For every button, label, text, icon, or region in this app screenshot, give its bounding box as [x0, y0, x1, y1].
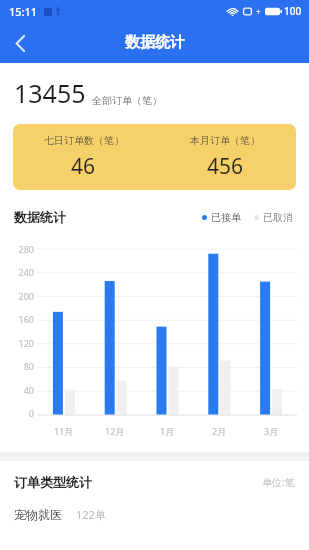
staticText: 160	[18, 313, 34, 325]
staticText: 13455	[14, 76, 86, 110]
staticText: 已取消	[263, 211, 293, 224]
staticText: 100	[284, 4, 302, 18]
staticText: 240	[18, 266, 34, 278]
staticText: 单位:笔	[262, 475, 295, 489]
button[interactable]: 宠物就医	[14, 507, 309, 522]
staticText: 数据统计	[125, 33, 185, 52]
staticText: 40	[23, 384, 34, 396]
button[interactable]: Back	[0, 23, 40, 63]
staticText: +	[256, 6, 261, 17]
staticText: 订单类型统计	[14, 474, 92, 490]
staticText: 80	[23, 360, 34, 372]
staticText: 280	[18, 243, 34, 255]
staticText: 46	[71, 152, 96, 181]
staticText: 11月	[54, 425, 74, 437]
staticText: 已接单	[211, 211, 241, 224]
staticText: 200	[18, 290, 34, 302]
staticText: 122单	[76, 507, 106, 522]
staticText: 七日订单数（笔）	[44, 134, 124, 147]
button[interactable]: 七日订单数（笔）	[13, 124, 296, 190]
button[interactable]: 已接单	[202, 211, 241, 224]
staticText: 15:11	[9, 4, 38, 19]
staticText: 1月	[160, 425, 175, 437]
staticText: 全部订单（笔）	[92, 94, 162, 107]
staticText: 456	[207, 152, 244, 181]
staticText: 本月订单（笔）	[190, 134, 260, 147]
staticText: 数据统计	[14, 209, 66, 225]
staticText: 0	[28, 407, 34, 419]
staticText: 12月	[105, 425, 125, 437]
staticText: 宠物就医	[14, 507, 62, 522]
button[interactable]: 已取消	[254, 211, 293, 224]
staticText: 120	[18, 337, 34, 349]
staticText: 2月	[212, 425, 227, 437]
staticText: 3月	[264, 425, 279, 437]
